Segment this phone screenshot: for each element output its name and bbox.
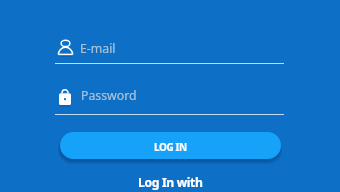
staticText: Log In with [138, 174, 203, 191]
button[interactable]: Log In with [0, 174, 340, 191]
staticText: LOG IN [154, 140, 187, 154]
staticText: E-mail [80, 40, 116, 57]
button[interactable]: LOG IN [60, 132, 281, 159]
button[interactable]: Password [58, 86, 285, 105]
staticText: Password [81, 87, 137, 104]
button[interactable]: E-mail [58, 39, 285, 58]
